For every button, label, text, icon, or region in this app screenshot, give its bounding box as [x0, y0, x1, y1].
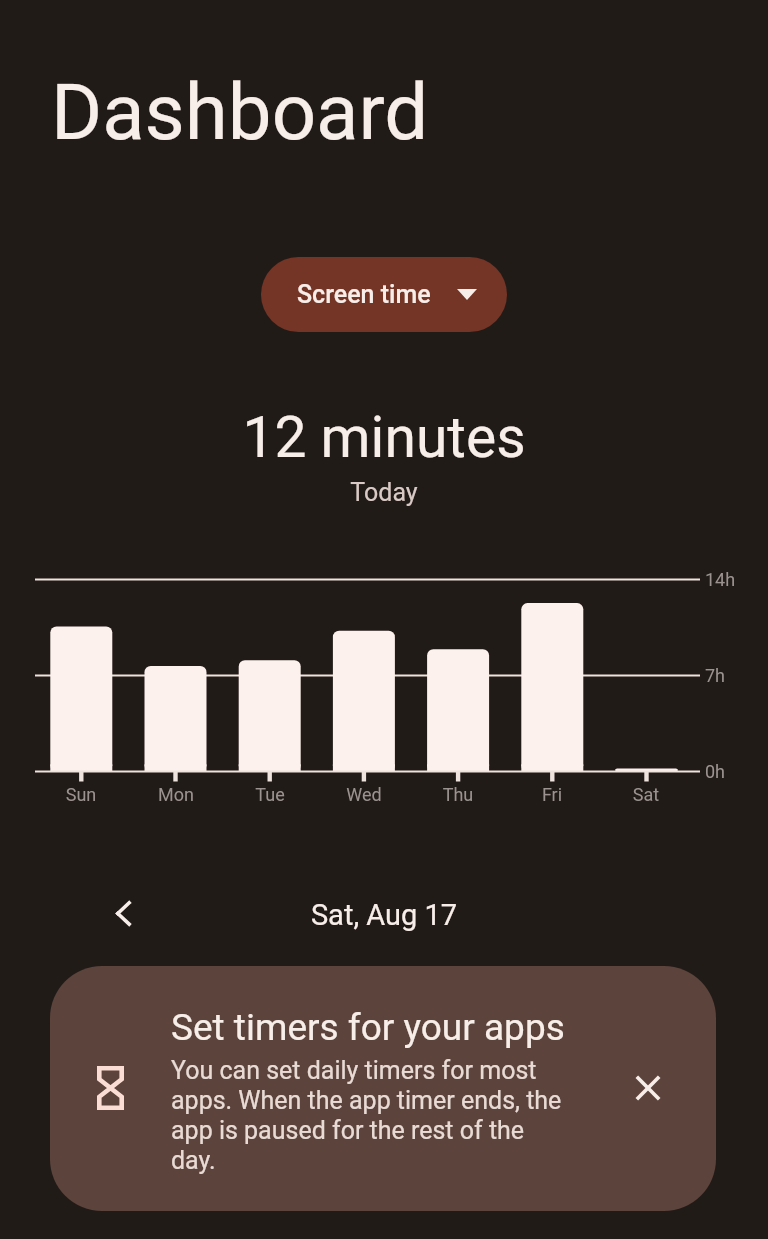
button[interactable]: Previous day [94, 884, 152, 942]
staticText: 0h [705, 761, 726, 782]
staticText: Sat, Aug 17 [0, 898, 768, 932]
button[interactable]: Set timers for your apps [50, 966, 716, 1211]
staticText: Wed [319, 784, 409, 805]
staticText: Dashboard [51, 67, 429, 158]
staticText: Tue [225, 784, 315, 805]
staticText: Today [0, 478, 768, 507]
staticText: Set timers for your apps [171, 1006, 565, 1049]
staticText: 12 minutes [0, 404, 768, 471]
staticText: Sun [36, 784, 126, 805]
staticText: 7h [705, 665, 726, 686]
staticText: Screen time [297, 280, 431, 309]
button[interactable]: Dismiss [620, 1060, 676, 1116]
staticText: Mon [131, 784, 221, 805]
button[interactable]: Screen time [261, 257, 507, 332]
staticText: Thu [413, 784, 503, 805]
staticText: Sat [601, 784, 691, 805]
staticText: You can set daily timers for most apps. … [171, 1056, 567, 1175]
staticText: Fri [507, 784, 597, 805]
staticText: 14h [705, 569, 736, 590]
